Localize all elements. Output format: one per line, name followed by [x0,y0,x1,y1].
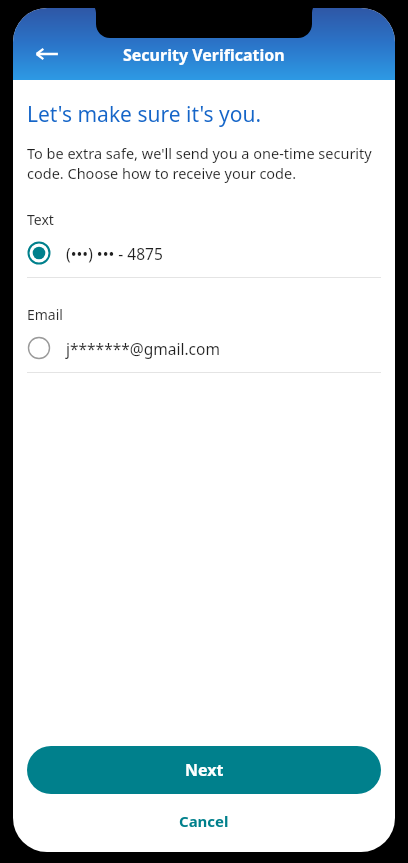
button[interactable]: Cancel [27,794,381,848]
button[interactable]: j*******@gmail.com [27,324,381,372]
staticText: Cancel [179,811,229,831]
staticText: Text [27,210,54,229]
button[interactable]: Next [27,746,381,794]
button[interactable]: (•••) ••• - 4875 [27,229,381,277]
staticText: Email [27,305,63,324]
staticText: Security Verification [123,44,285,66]
staticText: Let's make sure it's you. [27,100,262,129]
button[interactable]: Back [25,32,69,76]
staticText: j*******@gmail.com [66,338,220,359]
staticText: Next [185,759,224,781]
staticText: (•••) ••• - 4875 [66,243,163,264]
staticText: To be extra safe, we'll send you a one-t… [27,143,381,184]
